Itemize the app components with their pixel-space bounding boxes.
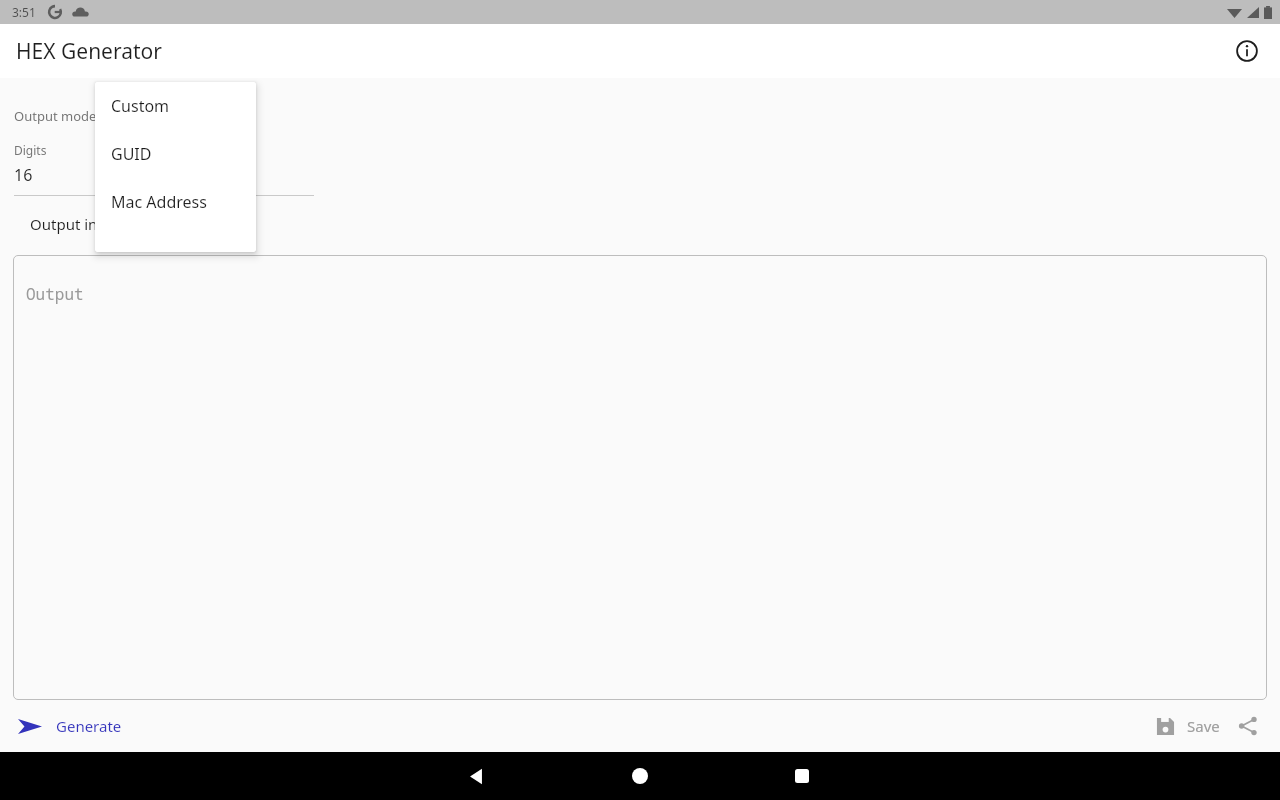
button[interactable]: Output in uppercase (0, 209, 1280, 239)
staticText: Output (26, 283, 84, 305)
staticText: Mac Address (111, 191, 207, 213)
staticText: Digits (14, 142, 47, 158)
staticText: 16 (14, 164, 33, 186)
button[interactable]: Digits (14, 142, 314, 196)
button[interactable]: Share (1228, 706, 1268, 746)
button[interactable]: Home (616, 752, 664, 800)
staticText: Custom (111, 95, 170, 117)
button[interactable]: Mac Address (95, 178, 256, 226)
button[interactable]: Custom (95, 82, 256, 130)
button[interactable]: GUID (95, 130, 256, 178)
button[interactable]: Output (13, 255, 1267, 700)
button[interactable]: Info (1225, 29, 1269, 73)
staticText: GUID (111, 143, 152, 165)
staticText: Generate (56, 716, 122, 736)
button[interactable]: Output mode (0, 100, 1280, 132)
button[interactable]: Back (452, 752, 500, 800)
staticText: Save (1187, 716, 1220, 736)
button[interactable]: Save (1148, 711, 1228, 741)
staticText: HEX Generator (16, 37, 162, 66)
button[interactable]: Recents (778, 752, 826, 800)
staticText: Output mode (14, 107, 97, 125)
button[interactable]: Generate (10, 711, 130, 741)
staticText: Output in uppercase (30, 214, 175, 234)
staticText: 3:51 (12, 4, 36, 20)
